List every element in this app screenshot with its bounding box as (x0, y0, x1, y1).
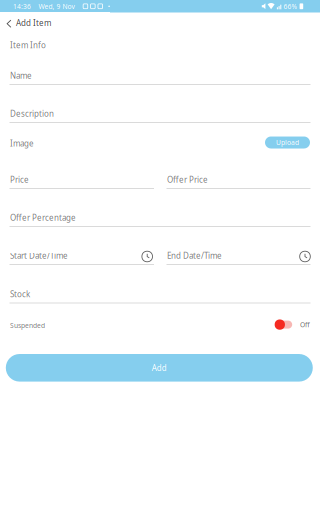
staticText: End Date/Time (167, 250, 222, 261)
staticText: Item Info (10, 40, 46, 50)
staticText: Start Date/Time (10, 250, 68, 261)
staticText: Off (300, 320, 310, 329)
staticText: Name (10, 70, 32, 81)
staticText: Wed, 9 Nov (38, 2, 74, 11)
staticText: Description (10, 108, 54, 119)
staticText: Image (10, 138, 34, 149)
staticText: Offer Price (167, 174, 208, 185)
staticText: 66% (284, 2, 298, 11)
staticText: Suspended (10, 321, 45, 330)
button[interactable]: Add (6, 354, 313, 382)
staticText: Upload (276, 138, 299, 147)
staticText: 14:36 (13, 2, 31, 11)
staticText: Offer Percentage (10, 212, 76, 223)
staticText: Add Item (16, 18, 51, 28)
staticText: Price (10, 174, 29, 185)
staticText: Stock (10, 289, 30, 299)
button[interactable]: Off (277, 317, 317, 333)
button[interactable]: Add Item (0, 12, 110, 34)
staticText: Add (152, 362, 167, 373)
button[interactable]: Upload (265, 136, 310, 148)
